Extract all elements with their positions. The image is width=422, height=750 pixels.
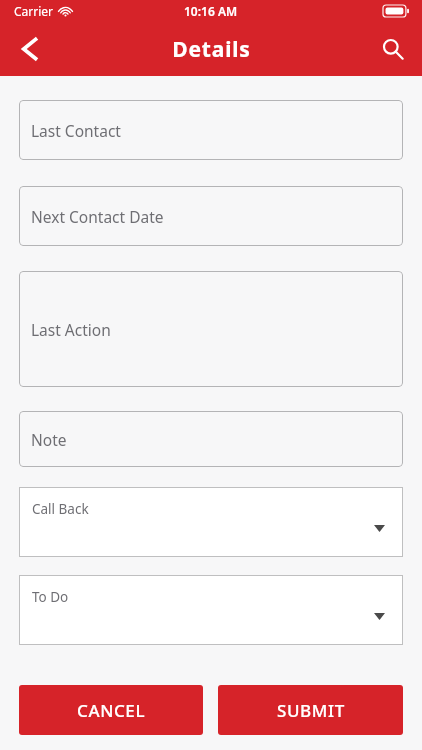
button[interactable]: To Do	[19, 575, 403, 645]
staticText: Call Back	[32, 500, 89, 518]
staticText: Last Action	[31, 319, 111, 340]
button[interactable]: CANCEL	[19, 685, 203, 735]
staticText: Next Contact Date	[31, 206, 164, 227]
button[interactable]: Last Action	[19, 271, 403, 387]
staticText: Details	[172, 35, 251, 64]
staticText: To Do	[32, 588, 69, 606]
staticText: Carrier	[14, 3, 54, 19]
button[interactable]: SUBMIT	[218, 685, 403, 735]
button[interactable]: Last Contact	[19, 100, 403, 160]
staticText: SUBMIT	[277, 699, 345, 722]
button[interactable]: Note	[19, 411, 403, 467]
staticText: 10:16 AM	[184, 3, 238, 19]
staticText: CANCEL	[77, 699, 146, 722]
button[interactable]: Search	[372, 28, 414, 70]
button[interactable]: Call Back	[19, 487, 403, 557]
button[interactable]: Next Contact Date	[19, 186, 403, 246]
staticText: Note	[31, 429, 67, 450]
staticText: Last Contact	[31, 120, 121, 141]
button[interactable]: Back	[8, 28, 50, 70]
